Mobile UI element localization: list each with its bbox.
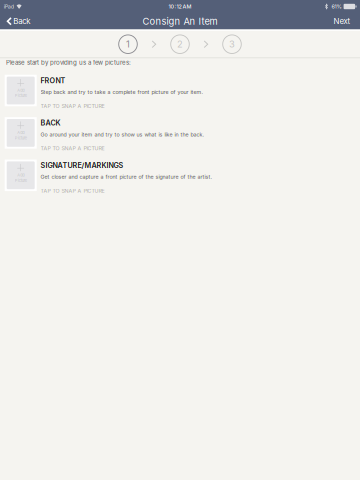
staticText: Picture bbox=[15, 93, 27, 98]
staticText: 1 bbox=[126, 39, 130, 50]
staticText: Please start by providing us a few pictu… bbox=[6, 59, 131, 66]
button[interactable]: Add bbox=[0, 116, 360, 158]
staticText: Go around your item and try to show us w… bbox=[40, 131, 204, 138]
staticText: TAP TO SNAP A PICTURE bbox=[40, 145, 104, 152]
staticText: Picture bbox=[15, 178, 27, 183]
staticText: TAP TO SNAP A PICTURE bbox=[40, 103, 104, 109]
staticText: Consign An Item bbox=[142, 16, 217, 27]
staticText: 61% bbox=[331, 3, 341, 10]
staticText: iPad bbox=[4, 3, 14, 10]
button[interactable]: 1 bbox=[117, 33, 139, 55]
staticText: Add bbox=[17, 130, 24, 135]
button[interactable]: 2 bbox=[169, 33, 191, 55]
button[interactable]: Add bbox=[0, 158, 360, 201]
staticText: BACK bbox=[40, 119, 60, 127]
staticText: 3 bbox=[229, 39, 235, 50]
staticText: Step back and try to take a complete fro… bbox=[40, 89, 203, 95]
button[interactable]: Add bbox=[0, 74, 360, 116]
staticText: Next bbox=[333, 16, 350, 26]
staticText: Add bbox=[17, 88, 24, 93]
button[interactable]: Next bbox=[325, 13, 360, 29]
staticText: SIGNATURE/MARKINGS bbox=[40, 161, 123, 170]
staticText: TAP TO SNAP A PICTURE bbox=[40, 187, 104, 194]
staticText: Get closer and capture a front picture o… bbox=[40, 174, 212, 180]
staticText: FRONT bbox=[40, 76, 65, 85]
staticText: Back bbox=[13, 16, 30, 26]
staticText: Add bbox=[17, 173, 24, 177]
staticText: 10:12 AM bbox=[168, 3, 191, 10]
staticText: Picture bbox=[15, 136, 27, 140]
button[interactable]: Back bbox=[0, 13, 36, 29]
staticText: 2 bbox=[177, 39, 183, 50]
button[interactable]: 3 bbox=[221, 33, 243, 55]
